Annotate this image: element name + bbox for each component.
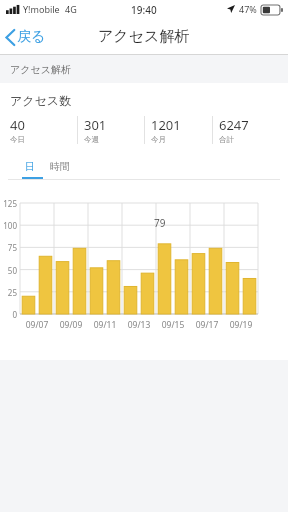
staticText: Y!mobile bbox=[23, 3, 60, 15]
staticText: 09/19 bbox=[224, 319, 258, 331]
staticText: 09/13 bbox=[122, 319, 156, 331]
staticText: 09/07 bbox=[20, 319, 54, 331]
staticText: 戻る bbox=[17, 28, 46, 46]
staticText: 6247 bbox=[219, 116, 249, 134]
staticText: 1201 bbox=[151, 116, 181, 134]
staticText: 09/15 bbox=[156, 319, 190, 331]
staticText: 50 bbox=[0, 265, 17, 276]
staticText: 合計 bbox=[219, 135, 234, 144]
staticText: 09/17 bbox=[190, 319, 224, 331]
staticText: 79 bbox=[154, 216, 166, 230]
button[interactable]: 戻る bbox=[0, 22, 56, 52]
staticText: 09/11 bbox=[88, 319, 122, 331]
staticText: 時間 bbox=[50, 160, 70, 173]
staticText: 09/09 bbox=[54, 319, 88, 331]
button[interactable]: 日 bbox=[22, 159, 38, 174]
staticText: 25 bbox=[0, 287, 17, 298]
staticText: 0 bbox=[0, 309, 17, 320]
staticText: 125 bbox=[0, 198, 17, 209]
staticText: アクセス解析 bbox=[10, 63, 71, 76]
staticText: 40 bbox=[10, 116, 25, 134]
button[interactable]: 時間 bbox=[47, 159, 73, 174]
staticText: 4G bbox=[65, 3, 77, 15]
staticText: 今日 bbox=[10, 135, 25, 144]
staticText: 301 bbox=[84, 116, 107, 134]
staticText: 今月 bbox=[151, 135, 166, 144]
staticText: アクセス解析 bbox=[98, 27, 190, 46]
staticText: 47% bbox=[239, 3, 257, 15]
staticText: 今週 bbox=[84, 135, 99, 144]
staticText: 75 bbox=[0, 242, 17, 253]
staticText: 19:40 bbox=[131, 3, 157, 17]
staticText: アクセス数 bbox=[10, 93, 72, 108]
staticText: 100 bbox=[0, 220, 17, 231]
staticText: 日 bbox=[25, 160, 35, 173]
